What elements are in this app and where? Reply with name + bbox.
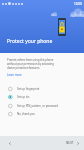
button[interactable]: Set up fingerprint xyxy=(0,85,84,93)
staticText: Set up PIN, pattern, or password xyxy=(17,104,58,108)
button[interactable]: Set up PIN, pattern, or password xyxy=(0,102,84,110)
button[interactable]: No, thank you xyxy=(0,110,84,118)
staticText: Set up fingerprint xyxy=(17,87,40,91)
staticText: No, thank you xyxy=(17,112,35,116)
staticText: 12:00 xyxy=(74,2,82,6)
staticText: Set up iris xyxy=(17,95,30,99)
button[interactable]: Back xyxy=(4,138,15,149)
staticText: Prevent others from using this phone wit… xyxy=(7,58,54,70)
button[interactable]: NEXT xyxy=(61,138,84,148)
button[interactable]: Learn more xyxy=(7,73,22,77)
staticText: Protect your phone xyxy=(7,38,53,45)
button[interactable]: Set up iris xyxy=(0,93,84,101)
staticText: NEXT xyxy=(66,141,74,145)
